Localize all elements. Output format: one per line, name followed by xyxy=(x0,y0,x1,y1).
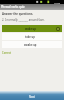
other: Selected answer xyxy=(56,27,60,31)
staticText: 10:53 xyxy=(54,1,61,4)
staticText: wake up xyxy=(25,27,36,31)
staticText: Correct xyxy=(2,51,11,55)
staticText: Next xyxy=(29,95,35,99)
button[interactable]: awake up xyxy=(2,41,62,48)
staticText: take up xyxy=(25,35,35,39)
button[interactable]: wake up xyxy=(2,25,62,32)
staticText: awake up xyxy=(24,43,37,47)
staticText: Answer the questions. xyxy=(2,12,34,16)
staticText: Phrasal verbs quiz xyxy=(1,5,25,9)
button[interactable]: take up xyxy=(2,33,62,40)
button[interactable]: Next xyxy=(0,91,64,100)
staticText: 2. I normally ________ around 6am. xyxy=(2,18,45,22)
